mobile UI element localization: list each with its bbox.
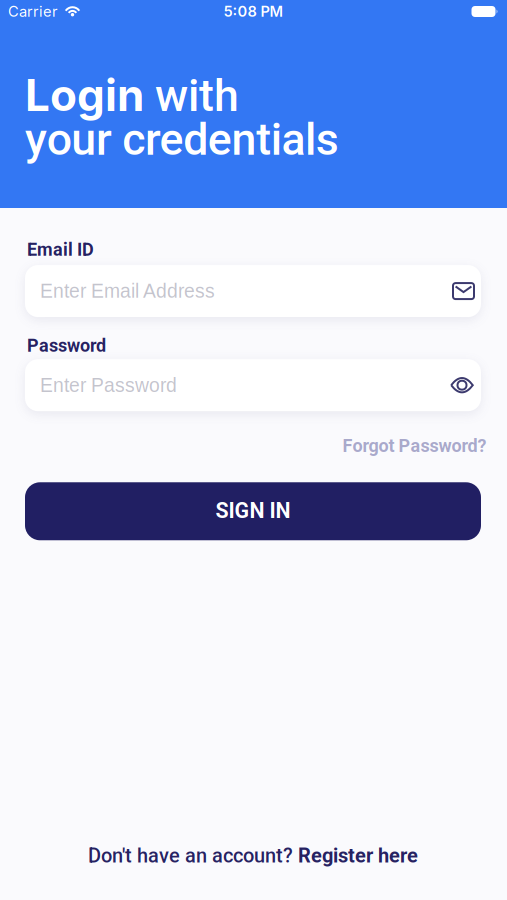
button[interactable]: Don't have an account? Register here <box>88 844 418 867</box>
button[interactable]: Password, Enter Password <box>25 359 481 411</box>
staticText: 5:08 PM <box>223 3 283 20</box>
button[interactable]: Show password <box>445 372 479 399</box>
staticText: Don't have an account? Register here <box>88 844 418 867</box>
button[interactable]: SIGN IN <box>25 482 481 540</box>
staticText: Carrier <box>8 3 58 20</box>
button[interactable]: Forgot Password? <box>337 435 481 456</box>
staticText: Login with <box>25 69 239 121</box>
staticText: Enter Password <box>40 374 177 396</box>
staticText: Enter Email Address <box>40 280 215 302</box>
staticText: Password <box>27 335 106 356</box>
staticText: your credentials <box>25 113 339 165</box>
button[interactable]: Email ID, Enter Email Address <box>25 265 481 317</box>
staticText: SIGN IN <box>215 498 290 523</box>
staticText: Email ID <box>27 239 94 260</box>
staticText: Forgot Password? <box>342 435 486 456</box>
